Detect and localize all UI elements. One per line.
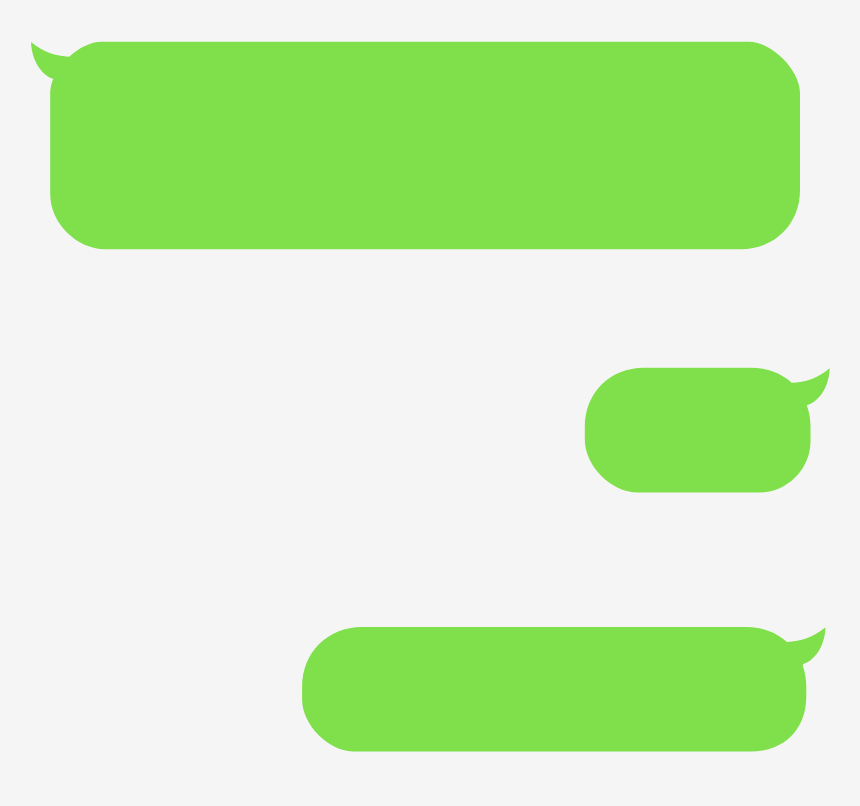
button[interactable]: Chat messages [0,0,860,806]
